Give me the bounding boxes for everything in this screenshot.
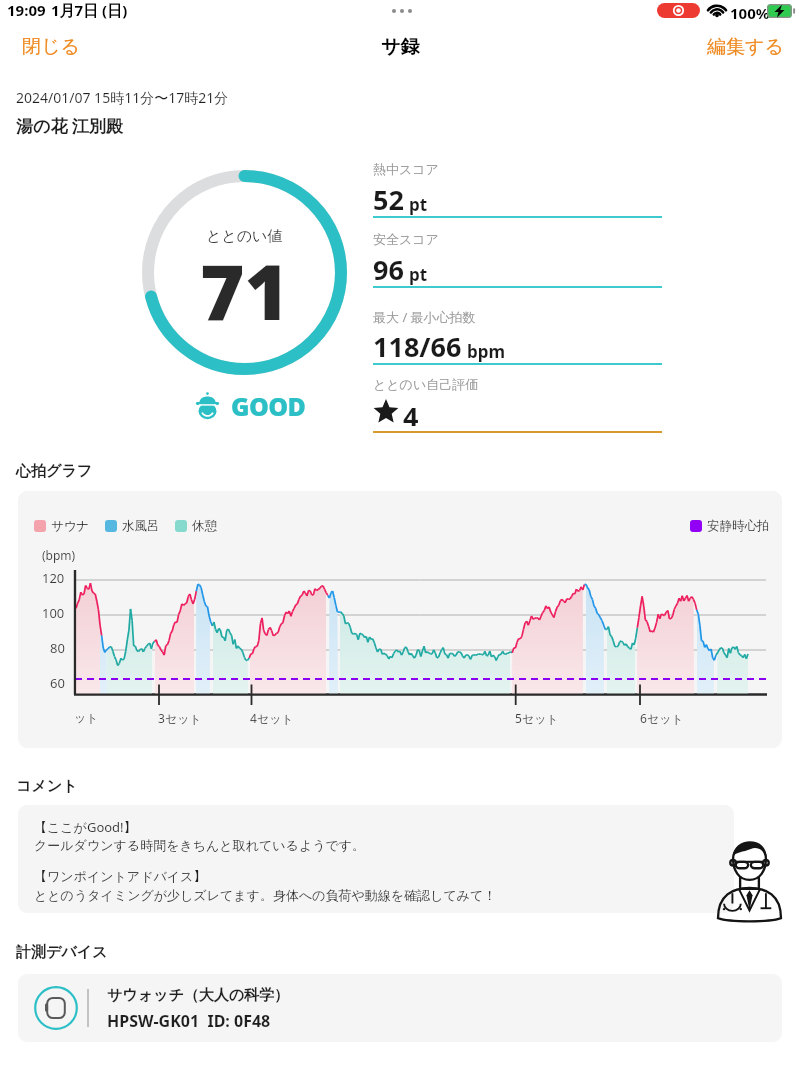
other: Device <box>34 986 78 1030</box>
staticText: 71 <box>200 239 290 343</box>
staticText: 100% <box>730 3 770 23</box>
staticText: (bpm) <box>42 547 76 563</box>
staticText: 80 <box>50 639 65 657</box>
staticText: 熱中スコア <box>373 161 439 177</box>
button[interactable]: Device <box>18 974 782 1042</box>
staticText: 編集する <box>707 35 784 59</box>
staticText: サウォッチ（大人の科学） <box>107 986 290 1005</box>
staticText: 19:09 <box>7 0 46 20</box>
staticText: 2024/01/07 15時11分〜17時21分 <box>16 88 229 107</box>
staticText: 96 <box>373 251 404 288</box>
staticText: pt <box>409 193 428 216</box>
staticText: ととのい自己評価 <box>373 376 479 392</box>
staticText: pt <box>409 263 428 286</box>
staticText: 4 <box>403 398 419 426</box>
staticText: 6セット <box>640 710 684 726</box>
staticText: 安全スコア <box>373 231 439 247</box>
staticText: ととのうタイミングが少しズレてます。身体への負荷や動線を確認してみて！ <box>34 887 497 903</box>
staticText: 60 <box>50 674 65 692</box>
staticText: サ録 <box>381 35 420 59</box>
button[interactable]: 閉じる <box>6 25 96 69</box>
staticText: 心拍グラフ <box>16 462 93 481</box>
staticText: 5セット <box>515 710 559 726</box>
staticText: 【ワンポイントアドバイス】 <box>34 868 207 884</box>
staticText: 最大 / 最小心拍数 <box>373 308 476 326</box>
staticText: コメント <box>16 777 78 796</box>
staticText: 安静時心拍 <box>707 518 770 534</box>
staticText: サウナ <box>51 518 90 534</box>
staticText: bpm <box>467 340 506 363</box>
staticText: HPSW-GK01 ID: 0F48 <box>107 1010 271 1032</box>
staticText: GOOD <box>231 389 306 421</box>
button[interactable]: 編集する <box>691 25 800 69</box>
staticText: 計測デバイス <box>16 943 108 962</box>
staticText: 4セット <box>250 710 294 726</box>
staticText: ととのい値 <box>206 227 283 246</box>
staticText: 湯の花 江別殿 <box>16 114 123 137</box>
staticText: クールダウンする時間をきちんと取れているようです。 <box>34 837 366 853</box>
other: Advisor <box>716 833 783 919</box>
staticText: 休憩 <box>192 518 217 534</box>
staticText: 1月7日 (日) <box>51 0 128 20</box>
staticText: 水風呂 <box>122 518 160 534</box>
staticText: 3セット <box>158 710 202 726</box>
staticText: 52 <box>373 181 404 218</box>
staticText: 100 <box>42 604 65 622</box>
staticText: 118/66 <box>373 328 462 365</box>
staticText: 【ここがGood!】 <box>34 818 137 836</box>
staticText: 閉じる <box>22 35 80 59</box>
staticText: 120 <box>42 569 65 587</box>
staticText: ット <box>74 710 99 725</box>
